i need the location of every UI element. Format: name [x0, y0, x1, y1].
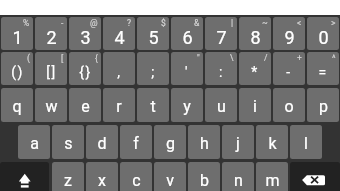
- button[interactable]: a: [18, 125, 50, 159]
- staticText: h: [200, 134, 209, 153]
- button[interactable]: {}: [69, 52, 101, 85]
- button[interactable]: e: [69, 88, 101, 122]
- button[interactable]: t: [137, 88, 169, 122]
- staticText: ': [185, 64, 189, 80]
- button[interactable]: 3: [69, 17, 101, 50]
- button[interactable]: Backspace: [290, 162, 340, 191]
- staticText: {}: [79, 64, 92, 80]
- button[interactable]: x: [86, 162, 118, 191]
- button[interactable]: c: [120, 162, 152, 191]
- button[interactable]: 9: [273, 17, 305, 50]
- button[interactable]: h: [188, 125, 220, 159]
- button[interactable]: k: [256, 125, 288, 159]
- button[interactable]: 7: [205, 17, 237, 50]
- staticText: 6: [182, 27, 193, 48]
- staticText: 3: [80, 27, 91, 48]
- button[interactable]: 2: [35, 17, 67, 50]
- staticText: 9: [284, 27, 295, 48]
- staticText: i: [253, 97, 257, 116]
- staticText: -: [61, 18, 64, 28]
- button[interactable]: n: [222, 162, 254, 191]
- staticText: 5: [148, 27, 159, 48]
- button[interactable]: v: [154, 162, 186, 191]
- staticText: (): [11, 64, 24, 80]
- button[interactable]: s: [52, 125, 84, 159]
- button[interactable]: d: [86, 125, 118, 159]
- staticText: ": [197, 53, 200, 63]
- staticText: ^: [332, 53, 336, 63]
- button[interactable]: =: [307, 52, 339, 85]
- button[interactable]: p: [307, 88, 339, 122]
- button[interactable]: Shift: [0, 162, 49, 191]
- button[interactable]: 5: [137, 17, 169, 50]
- staticText: 1: [12, 27, 23, 48]
- staticText: ?: [127, 18, 132, 28]
- staticText: =: [318, 64, 328, 80]
- staticText: $: [161, 18, 166, 28]
- button[interactable]: g: [154, 125, 186, 159]
- button[interactable]: r: [103, 88, 135, 122]
- staticText: 8: [250, 27, 261, 48]
- staticText: 2: [46, 27, 57, 48]
- staticText: +: [297, 53, 302, 63]
- button[interactable]: f: [120, 125, 152, 159]
- staticText: e: [81, 97, 90, 116]
- button[interactable]: u: [205, 88, 237, 122]
- staticText: w: [45, 97, 58, 116]
- staticText: j: [236, 134, 240, 153]
- button[interactable]: ,: [103, 52, 135, 85]
- staticText: g: [166, 134, 175, 153]
- staticText: 4: [114, 27, 125, 48]
- staticText: c: [132, 171, 141, 190]
- staticText: m: [265, 171, 280, 190]
- button[interactable]: z: [52, 162, 84, 191]
- staticText: /: [264, 53, 268, 63]
- button[interactable]: 4: [103, 17, 135, 50]
- staticText: *: [251, 64, 259, 80]
- staticText: 7: [216, 27, 227, 48]
- staticText: u: [217, 97, 226, 116]
- staticText: a: [30, 134, 39, 153]
- button[interactable]: 6: [171, 17, 203, 50]
- staticText: r: [116, 97, 122, 116]
- staticText: n: [234, 171, 243, 190]
- button[interactable]: l: [290, 125, 322, 159]
- staticText: >: [331, 18, 336, 28]
- staticText: z: [64, 171, 72, 190]
- button[interactable]: m: [256, 162, 288, 191]
- staticText: &: [194, 18, 200, 28]
- button[interactable]: w: [35, 88, 67, 122]
- staticText: %: [23, 18, 30, 28]
- staticText: :: [219, 64, 224, 80]
- staticText: []: [46, 64, 57, 80]
- button[interactable]: *: [239, 52, 271, 85]
- button[interactable]: b: [188, 162, 220, 191]
- button[interactable]: 1: [1, 17, 33, 50]
- button[interactable]: 0: [307, 17, 339, 50]
- button[interactable]: 8: [239, 17, 271, 50]
- staticText: ,: [117, 64, 122, 80]
- staticText: v: [166, 171, 174, 190]
- staticText: @: [90, 18, 98, 28]
- staticText: t: [150, 97, 156, 116]
- button[interactable]: ;: [137, 52, 169, 85]
- staticText: q: [12, 97, 22, 116]
- staticText: \: [230, 53, 234, 63]
- button[interactable]: o: [273, 88, 305, 122]
- staticText: ~: [262, 18, 268, 28]
- button[interactable]: ': [171, 52, 203, 85]
- button[interactable]: -: [273, 52, 305, 85]
- button[interactable]: :: [205, 52, 237, 85]
- button[interactable]: q: [1, 88, 33, 122]
- staticText: <: [297, 18, 302, 28]
- button[interactable]: i: [239, 88, 271, 122]
- button[interactable]: []: [35, 52, 67, 85]
- staticText: y: [183, 97, 191, 116]
- button[interactable]: (): [1, 52, 33, 85]
- staticText: [: [61, 53, 64, 63]
- staticText: 0: [318, 27, 329, 48]
- button[interactable]: y: [171, 88, 203, 122]
- staticText: x: [98, 171, 106, 190]
- button[interactable]: j: [222, 125, 254, 159]
- staticText: (: [27, 53, 30, 63]
